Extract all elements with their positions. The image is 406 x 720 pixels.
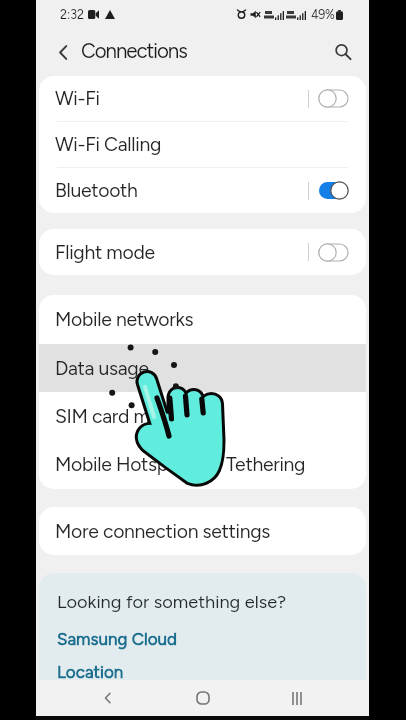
staticText: Samsung Cloud	[57, 629, 177, 649]
button[interactable]: Data usage	[39, 344, 366, 392]
staticText: 49%	[311, 7, 335, 22]
staticText: More connection settings	[55, 520, 271, 543]
button[interactable]: Samsung Cloud	[57, 629, 177, 649]
staticText: Mobile networks	[55, 308, 194, 331]
button[interactable]: Mobile networks	[39, 295, 366, 344]
staticText: Wi-Fi Calling	[55, 133, 161, 156]
button[interactable]: Mobile Hotspot and Tethering	[39, 440, 366, 489]
staticText: Bluetooth	[55, 179, 138, 202]
staticText: 2:32	[60, 7, 84, 22]
button[interactable]: Back	[49, 38, 77, 66]
button[interactable]: Flight mode	[39, 229, 366, 275]
button[interactable]: Recent apps	[275, 680, 319, 716]
staticText: Looking for something else?	[57, 591, 287, 613]
staticText: Flight mode	[55, 241, 155, 264]
button[interactable]: Home	[181, 680, 225, 716]
staticText: Mobile Hotspot and Tethering	[55, 453, 306, 476]
button[interactable]: Wi-Fi	[39, 76, 366, 121]
button[interactable]: Search	[328, 37, 358, 67]
button[interactable]: Wi-Fi Calling	[39, 122, 366, 167]
staticText: Location	[57, 662, 124, 682]
button[interactable]: SIM card manager	[39, 392, 366, 440]
button[interactable]: More connection settings	[39, 507, 366, 555]
button[interactable]: Location	[57, 662, 124, 682]
button[interactable]: Back	[86, 680, 130, 716]
staticText: Data usage	[55, 357, 149, 380]
staticText: Wi-Fi	[55, 87, 100, 110]
staticText: Connections	[81, 39, 187, 64]
staticText: SIM card manager	[55, 405, 207, 428]
button[interactable]: Bluetooth	[39, 168, 366, 213]
